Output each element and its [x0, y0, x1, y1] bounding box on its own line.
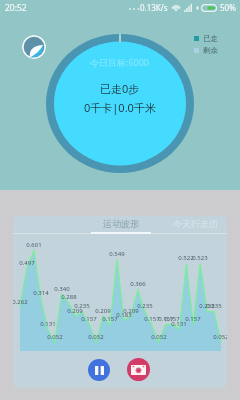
staticText: 0.157 — [184, 315, 202, 323]
button[interactable]: Pause — [88, 359, 110, 381]
staticText: 0.157 — [157, 315, 175, 323]
staticText: 0.262 — [13, 298, 29, 306]
button[interactable]: 运动波形 — [91, 216, 151, 238]
staticText: 50% — [220, 2, 236, 13]
staticText: 0.052 — [46, 333, 64, 341]
button[interactable]: 今天行走历 — [159, 216, 227, 238]
staticText: 0.052 — [212, 333, 227, 341]
staticText: 0.131 — [170, 320, 188, 328]
staticText: 0.549 — [108, 250, 126, 258]
staticText: 0.235 — [73, 302, 91, 310]
staticText: 0.523 — [191, 254, 209, 262]
button[interactable]: App logo — [22, 35, 46, 59]
staticText: 0.183 — [115, 311, 133, 319]
staticText: 0.314 — [32, 289, 50, 297]
staticText: 0.235 — [205, 302, 223, 310]
staticText: 已走 — [203, 34, 218, 43]
staticText: 0.131 — [39, 320, 57, 328]
staticText: 0.157 — [163, 315, 181, 323]
staticText: 0.235 — [198, 302, 216, 310]
staticText: 0.157 — [80, 315, 98, 323]
staticText: 0.601 — [25, 241, 43, 249]
staticText: 今天行走历 — [173, 218, 218, 229]
staticText: 0.340 — [53, 285, 71, 293]
staticText: 剩余 — [203, 46, 218, 55]
staticText: 0.13K/s — [140, 2, 168, 13]
staticText: 0.157 — [101, 315, 119, 323]
staticText: 0.052 — [87, 333, 105, 341]
staticText: 已走0步 — [100, 81, 140, 96]
staticText: 0.209 — [94, 307, 112, 315]
staticText: 0.209 — [66, 307, 84, 315]
staticText: 0.366 — [129, 280, 147, 288]
staticText: 0.522 — [177, 254, 195, 262]
staticText: 0.209 — [122, 307, 140, 315]
staticText: 0.288 — [60, 293, 78, 301]
staticText: 0.157 — [143, 315, 161, 323]
button[interactable]: Camera — [127, 358, 150, 381]
staticText: 0.235 — [136, 302, 154, 310]
staticText: 0.052 — [150, 333, 168, 341]
staticText: 0千卡|0.0千米 — [84, 100, 156, 115]
staticText: 0.497 — [18, 259, 36, 267]
staticText: 今日目标:6000 — [90, 56, 150, 68]
staticText: 运动波形 — [103, 218, 139, 229]
staticText: 20:52 — [5, 2, 27, 14]
